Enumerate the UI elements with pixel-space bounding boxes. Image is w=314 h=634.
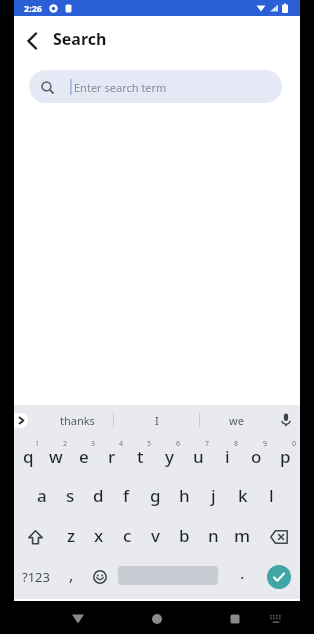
staticText: a (37, 484, 47, 507)
button[interactable] (86, 555, 114, 595)
staticText: f (123, 484, 130, 507)
button[interactable]: u (184, 435, 213, 475)
staticText: j (211, 484, 216, 507)
staticText: Search (53, 28, 107, 50)
button[interactable]: Enter search term (29, 70, 282, 103)
button[interactable]: y (155, 435, 184, 475)
staticText: 3 (91, 439, 96, 449)
staticText: 4 (119, 439, 124, 449)
staticText: ?123 (22, 568, 50, 586)
button[interactable]: v (141, 515, 170, 555)
button[interactable]: x (85, 515, 113, 555)
button[interactable]: thanks (58, 405, 96, 435)
button[interactable]: m (228, 515, 257, 555)
button[interactable]: , (57, 555, 86, 595)
staticText: thanks (60, 413, 95, 428)
button[interactable]: i (213, 435, 242, 475)
staticText: k (238, 484, 248, 507)
staticText: o (251, 445, 262, 468)
staticText: h (179, 484, 190, 507)
staticText: y (165, 445, 174, 468)
button[interactable]: d (84, 475, 112, 515)
staticText: w (49, 445, 63, 468)
button[interactable]: p (271, 435, 300, 475)
button[interactable] (276, 410, 296, 430)
staticText: b (179, 524, 190, 547)
button[interactable]: e (70, 435, 98, 475)
staticText: l (269, 484, 274, 507)
staticText: u (193, 445, 204, 468)
button[interactable]: s (56, 475, 84, 515)
button[interactable] (114, 555, 228, 595)
staticText: x (94, 524, 104, 547)
staticText: s (66, 484, 75, 507)
button[interactable] (14, 413, 28, 428)
staticText: p (280, 445, 291, 468)
button[interactable]: f (112, 475, 141, 515)
staticText: v (151, 524, 160, 547)
staticText: n (208, 524, 219, 547)
button[interactable]: r (98, 435, 126, 475)
staticText: 2:26 (24, 2, 42, 14)
button[interactable]: k (228, 475, 257, 515)
button[interactable]: q (14, 435, 42, 475)
button[interactable]: b (170, 515, 199, 555)
button[interactable]: ?123 (14, 555, 57, 595)
staticText: e (79, 445, 89, 468)
staticText: d (93, 484, 104, 507)
button[interactable]: t (126, 435, 155, 475)
staticText: c (123, 524, 132, 547)
staticText: 9 (263, 439, 268, 449)
button[interactable] (221, 605, 249, 633)
button[interactable] (143, 605, 171, 633)
staticText: q (23, 445, 34, 468)
button[interactable]: c (113, 515, 141, 555)
staticText: g (150, 484, 161, 507)
staticText: 1 (35, 439, 40, 449)
staticText: z (67, 524, 76, 547)
staticText: 2 (63, 439, 68, 449)
staticText: t (137, 445, 144, 468)
button[interactable] (257, 555, 300, 595)
button[interactable]: g (141, 475, 170, 515)
button[interactable]: a (28, 475, 56, 515)
button[interactable]: we (222, 405, 250, 435)
staticText: 6 (176, 439, 181, 449)
staticText: i (225, 445, 230, 468)
button[interactable]: . (228, 555, 257, 595)
button[interactable] (64, 605, 92, 633)
button[interactable] (266, 609, 286, 629)
staticText: . (240, 562, 245, 584)
staticText: m (234, 524, 251, 547)
staticText: 5 (147, 439, 152, 449)
staticText: I (155, 413, 159, 428)
staticText: r (108, 445, 116, 468)
button[interactable] (14, 515, 57, 555)
button[interactable]: n (199, 515, 228, 555)
button[interactable] (19, 25, 47, 53)
button[interactable]: o (242, 435, 271, 475)
staticText: 7 (205, 439, 210, 449)
staticText: 0 (292, 439, 297, 449)
button[interactable]: h (170, 475, 199, 515)
button[interactable]: I (145, 405, 169, 435)
staticText: , (69, 564, 74, 586)
button[interactable]: z (57, 515, 85, 555)
button[interactable]: l (257, 475, 286, 515)
button[interactable] (257, 515, 300, 555)
button[interactable]: w (42, 435, 70, 475)
staticText: 8 (234, 439, 239, 449)
button[interactable]: j (199, 475, 228, 515)
staticText: Enter search term (74, 80, 167, 95)
staticText: we (229, 413, 244, 428)
